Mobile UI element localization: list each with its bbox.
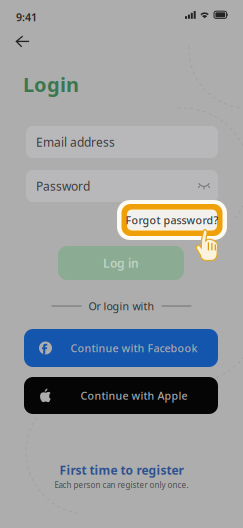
staticText: Forgot password? xyxy=(125,213,218,227)
staticText: Or login with xyxy=(88,299,154,313)
button[interactable]: First time to register xyxy=(0,462,243,478)
button[interactable]: Back xyxy=(5,26,39,56)
staticText: Continue with Facebook xyxy=(70,341,197,355)
staticText: Each person can register only once. xyxy=(54,480,188,490)
staticText: Continue with Apple xyxy=(80,388,187,403)
button[interactable]: Forgot password? xyxy=(117,200,227,240)
staticText: Log in xyxy=(103,255,139,271)
staticText: First time to register xyxy=(59,462,183,478)
staticText: 9:41 xyxy=(16,10,37,24)
button[interactable]: Continue with Apple xyxy=(24,377,218,414)
staticText: Login xyxy=(23,71,79,98)
button[interactable]: Continue with Facebook xyxy=(24,329,218,367)
button[interactable]: Log in xyxy=(58,246,184,280)
staticText: Password xyxy=(36,178,90,194)
staticText: Email address xyxy=(36,134,115,150)
